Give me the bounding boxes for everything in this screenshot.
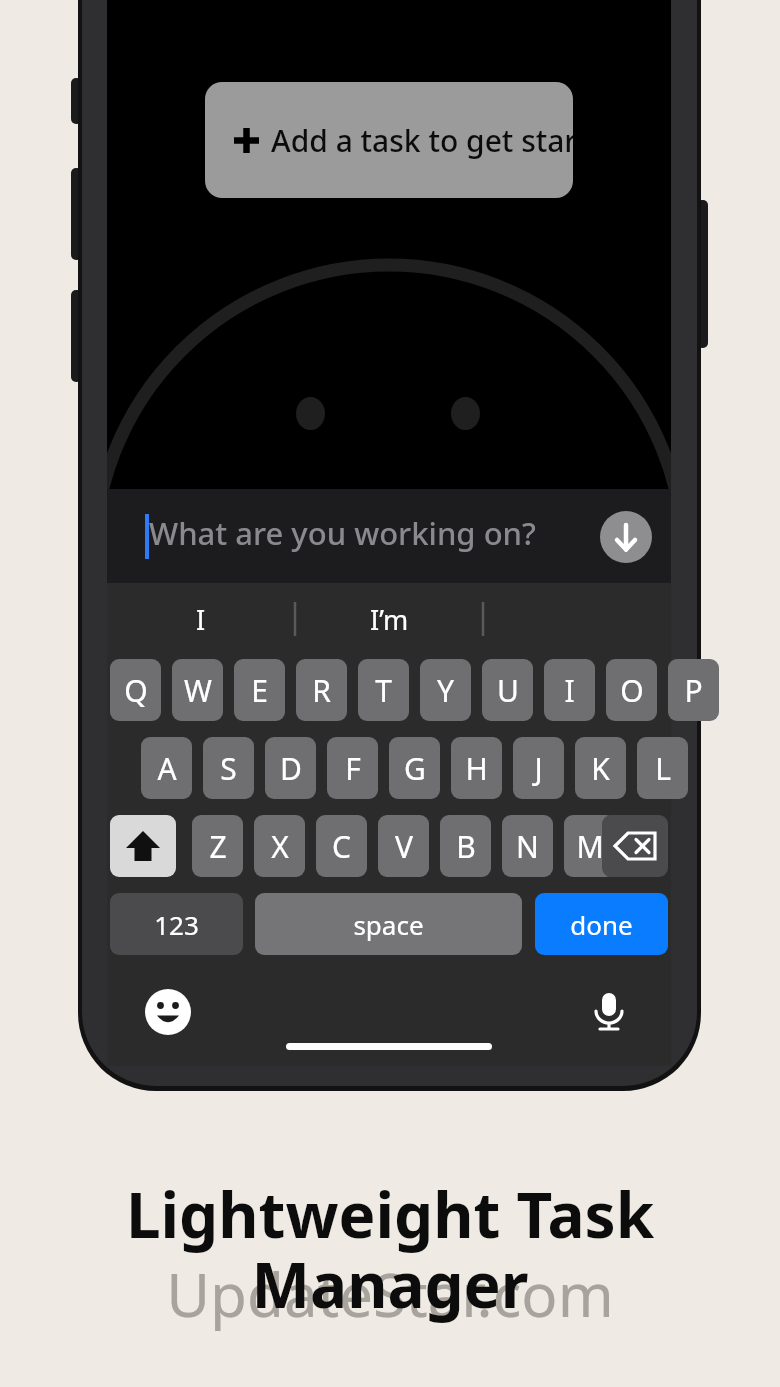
button[interactable]: I xyxy=(107,586,295,652)
button[interactable]: S xyxy=(203,737,254,799)
staticText: B xyxy=(456,826,476,867)
button[interactable]: Shift xyxy=(110,815,176,877)
button[interactable]: I’m xyxy=(295,586,483,652)
button[interactable]: 123 xyxy=(110,893,243,955)
staticText: O xyxy=(620,670,644,711)
button[interactable]: M xyxy=(564,815,615,877)
staticText: UpdateStar.com xyxy=(0,1253,780,1335)
staticText: done xyxy=(570,907,633,942)
staticText: I xyxy=(196,601,206,638)
staticText: G xyxy=(404,748,426,789)
staticText: R xyxy=(312,670,331,711)
button[interactable]: L xyxy=(637,737,688,799)
button[interactable]: W xyxy=(172,659,223,721)
staticText: J xyxy=(534,748,543,789)
staticText: E xyxy=(251,670,268,711)
button[interactable]: P xyxy=(668,659,719,721)
staticText: Lightweight Task Manager xyxy=(0,1172,780,1326)
staticText: V xyxy=(395,826,413,867)
button[interactable]: I xyxy=(544,659,595,721)
button[interactable]: Emoji keyboard xyxy=(145,989,191,1035)
staticText: I xyxy=(564,670,575,711)
button[interactable]: X xyxy=(254,815,305,877)
staticText: W xyxy=(184,670,212,711)
button[interactable]: F xyxy=(327,737,378,799)
button[interactable]: Z xyxy=(192,815,243,877)
staticText: A xyxy=(157,748,177,789)
button[interactable]: V xyxy=(378,815,429,877)
button[interactable]: K xyxy=(575,737,626,799)
staticText: S xyxy=(220,748,237,789)
staticText: Add a task to get started xyxy=(271,120,573,161)
staticText: X xyxy=(271,826,289,867)
staticText: What are you working on? xyxy=(149,512,536,554)
staticText: T xyxy=(375,670,392,711)
staticText: M xyxy=(576,826,604,867)
staticText: I’m xyxy=(370,601,409,638)
button[interactable]: C xyxy=(316,815,367,877)
staticText: U xyxy=(497,670,519,711)
button[interactable]: Voice input xyxy=(586,987,632,1033)
button[interactable]: J xyxy=(513,737,564,799)
staticText: Y xyxy=(437,670,454,711)
button[interactable]: done xyxy=(535,893,668,955)
button[interactable]: Add a task to get started xyxy=(205,82,573,198)
button[interactable]: Y xyxy=(420,659,471,721)
button[interactable]: T xyxy=(358,659,409,721)
staticText: H xyxy=(465,748,488,789)
button[interactable]: O xyxy=(606,659,657,721)
button[interactable]: Q xyxy=(110,659,161,721)
button[interactable]: space xyxy=(255,893,522,955)
button[interactable]: R xyxy=(296,659,347,721)
staticText: N xyxy=(516,826,539,867)
staticText: C xyxy=(332,826,351,867)
button[interactable]: G xyxy=(389,737,440,799)
staticText: K xyxy=(591,748,610,789)
button[interactable]: Backspace xyxy=(602,815,668,877)
staticText: 123 xyxy=(154,907,199,942)
button[interactable]: E xyxy=(234,659,285,721)
staticText: P xyxy=(684,670,703,711)
staticText: Q xyxy=(124,670,148,711)
button[interactable]: B xyxy=(440,815,491,877)
button[interactable]: What are you working on? xyxy=(107,489,671,583)
button[interactable]: Dismiss keyboard xyxy=(600,511,652,563)
staticText: D xyxy=(280,748,302,789)
button[interactable]: D xyxy=(265,737,316,799)
button[interactable]: A xyxy=(141,737,192,799)
button[interactable]: N xyxy=(502,815,553,877)
staticText: L xyxy=(655,748,671,789)
staticText: space xyxy=(353,907,424,942)
staticText: Z xyxy=(209,826,227,867)
staticText: F xyxy=(345,748,361,789)
button[interactable]: U xyxy=(482,659,533,721)
button[interactable]: H xyxy=(451,737,502,799)
